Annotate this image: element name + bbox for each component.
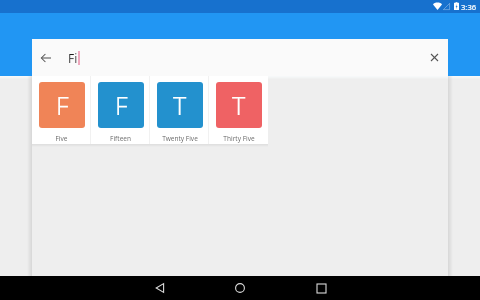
staticText: Thirty Five xyxy=(223,134,255,143)
button[interactable]: Back xyxy=(32,39,60,76)
button[interactable]: F xyxy=(91,76,150,144)
staticText: F xyxy=(56,88,69,122)
staticText: Fi xyxy=(68,50,78,66)
button[interactable]: Back xyxy=(32,39,448,76)
staticText: Twenty Five xyxy=(162,134,198,143)
button[interactable]: Recents xyxy=(309,276,333,300)
button[interactable]: T xyxy=(209,76,268,144)
staticText: T xyxy=(173,88,187,122)
staticText: 3:36 xyxy=(461,2,477,12)
button[interactable]: Back xyxy=(148,276,172,300)
button[interactable]: T xyxy=(150,76,209,144)
button[interactable]: Home xyxy=(228,276,252,300)
button[interactable]: F xyxy=(32,76,91,144)
button[interactable]: Clear query xyxy=(420,39,448,76)
staticText: Five xyxy=(55,134,68,143)
staticText: F xyxy=(115,88,128,122)
staticText: T xyxy=(232,88,246,122)
staticText: Fifteen xyxy=(110,134,131,143)
